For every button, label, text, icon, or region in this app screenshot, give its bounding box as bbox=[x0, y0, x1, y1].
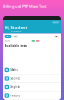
staticText: Science bbox=[10, 77, 20, 80]
staticText: Hi, Student bbox=[5, 25, 28, 30]
staticText: Available tests bbox=[5, 44, 27, 48]
staticText: Recent bbox=[5, 40, 11, 42]
button[interactable]: Science bbox=[3, 74, 61, 83]
button[interactable]: All tests bbox=[5, 35, 11, 38]
button[interactable]: English bbox=[3, 83, 61, 91]
staticText: All tests bbox=[6, 36, 10, 37]
staticText: Bilingual PYP Maxi Test bbox=[3, 4, 47, 9]
staticText: Pick a test to begin bbox=[11, 30, 22, 32]
staticText: English bbox=[10, 85, 20, 89]
button[interactable]: Filter bbox=[54, 35, 59, 38]
button[interactable]: Maths bbox=[3, 66, 61, 74]
staticText: Sign out bbox=[53, 21, 58, 23]
staticText: Filter bbox=[55, 36, 58, 37]
button[interactable]: History bbox=[3, 91, 61, 100]
staticText: History bbox=[10, 94, 19, 97]
staticText: Mine bbox=[14, 36, 17, 37]
staticText: Maths bbox=[10, 68, 17, 72]
button[interactable]: Mine bbox=[13, 35, 18, 38]
button[interactable]: Sign out bbox=[52, 21, 59, 24]
